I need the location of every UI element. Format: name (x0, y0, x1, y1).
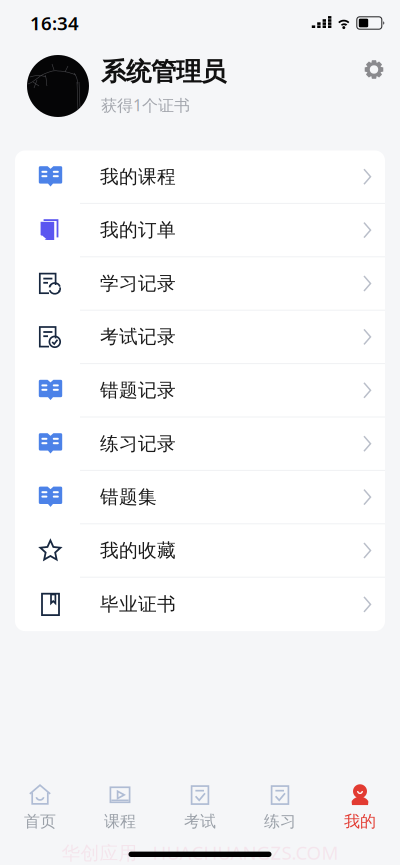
button[interactable]: 我的 (320, 784, 400, 831)
staticText: 我的订单 (100, 219, 176, 241)
staticText: 首页 (24, 812, 56, 831)
button[interactable]: 我的收藏 (15, 524, 385, 578)
button[interactable]: 学习记录 (15, 257, 385, 311)
staticText: 获得1个证书 (101, 94, 190, 116)
staticText: 16:34 (30, 11, 79, 35)
button[interactable]: 课程 (80, 784, 160, 831)
button[interactable]: 错题记录 (15, 364, 385, 417)
button[interactable]: Settings (357, 60, 400, 112)
staticText: 错题集 (100, 486, 157, 508)
staticText: 我的 (344, 812, 376, 831)
button[interactable]: 考试 (160, 784, 240, 831)
staticText: 我的课程 (100, 165, 176, 188)
button[interactable]: 我的订单 (15, 204, 385, 257)
staticText: 考试记录 (100, 325, 176, 348)
staticText: 错题记录 (100, 379, 176, 402)
staticText: 练习记录 (100, 432, 176, 455)
button[interactable]: 考试记录 (15, 311, 385, 364)
staticText: 毕业证书 (100, 593, 176, 616)
staticText: 练习 (264, 812, 296, 831)
staticText: 课程 (104, 812, 136, 831)
button[interactable]: 我的课程 (15, 150, 385, 204)
button[interactable]: 错题集 (15, 471, 385, 524)
button[interactable]: 练习 (240, 784, 320, 831)
staticText: 系统管理员 (101, 56, 226, 87)
staticText: 考试 (184, 812, 216, 831)
button[interactable]: 毕业证书 (15, 578, 385, 631)
staticText: 我的收藏 (100, 539, 176, 562)
staticText: 华创应用 · HUACHUANGZS.COM (61, 840, 338, 865)
staticText: 学习记录 (100, 272, 176, 295)
button[interactable]: 首页 (0, 784, 80, 831)
button[interactable]: 练习记录 (15, 417, 385, 471)
